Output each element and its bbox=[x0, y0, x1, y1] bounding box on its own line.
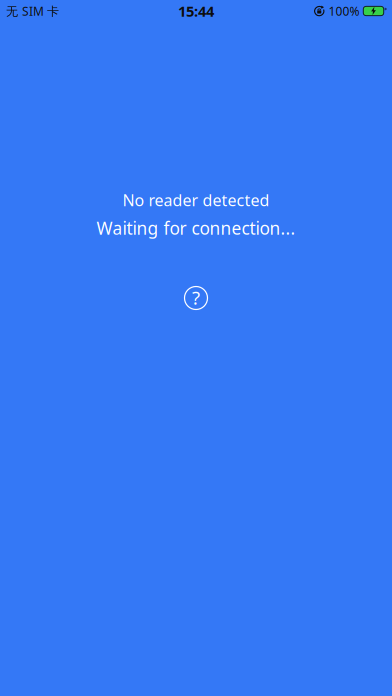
staticText: 无 SIM 卡 bbox=[6, 3, 59, 19]
staticText: Waiting for connection... bbox=[96, 216, 295, 239]
button[interactable]: Help bbox=[176, 278, 216, 318]
staticText: No reader detected bbox=[122, 189, 269, 211]
staticText: 100% bbox=[328, 3, 359, 19]
staticText: 15:44 bbox=[178, 1, 214, 21]
staticText: ? bbox=[192, 285, 200, 310]
